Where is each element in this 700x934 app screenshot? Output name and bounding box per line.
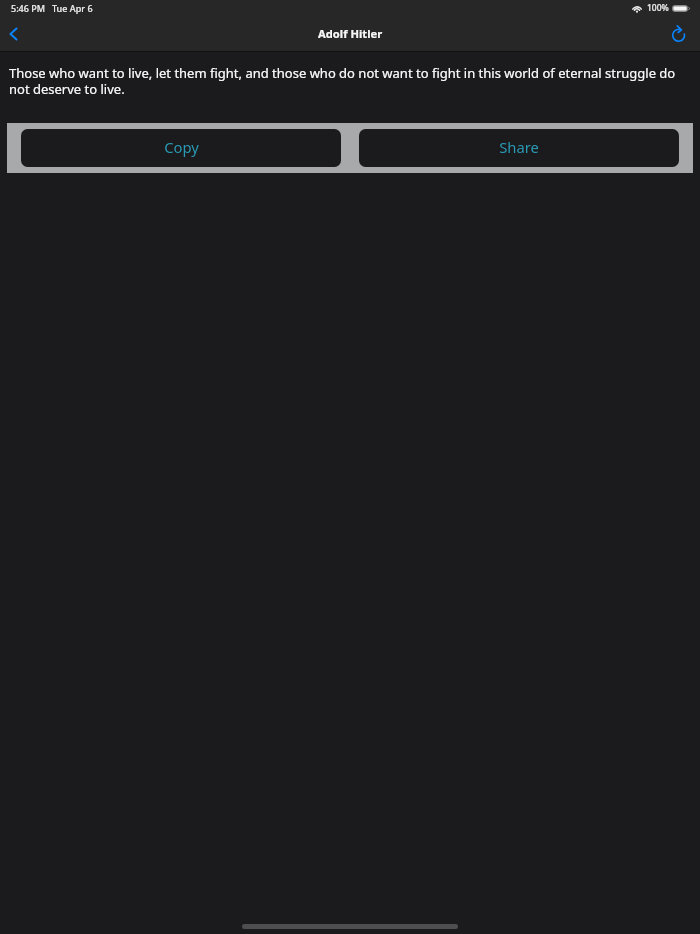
button[interactable]: Back	[0, 20, 36, 51]
staticText: Copy	[164, 137, 199, 157]
button[interactable]: Share	[359, 129, 679, 167]
staticText: Adolf Hitler	[318, 26, 383, 41]
staticText: 100%	[647, 2, 669, 14]
staticText: Tue Apr 6	[52, 2, 93, 14]
staticText: Share	[499, 137, 539, 157]
staticText: Those who want to live, let them fight, …	[9, 65, 691, 97]
staticText: 5:46 PM	[11, 2, 45, 14]
button[interactable]: Copy	[21, 129, 341, 167]
button[interactable]: Refresh	[664, 20, 700, 51]
